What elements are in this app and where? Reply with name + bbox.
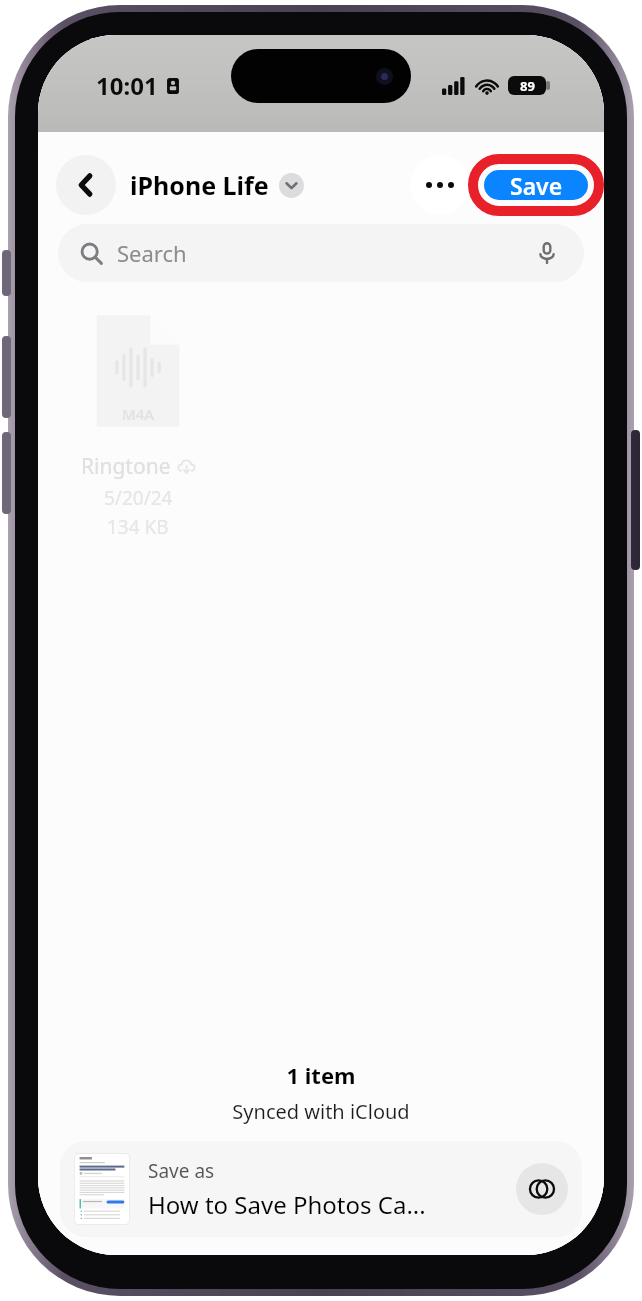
- button[interactable]: M4A: [58, 312, 218, 540]
- staticText: 5/20/24: [104, 485, 173, 511]
- button[interactable]: Voice search: [532, 238, 562, 268]
- staticText: 1 item: [286, 1060, 356, 1090]
- button[interactable]: iPhone Life: [130, 168, 304, 202]
- button[interactable]: More options: [410, 155, 470, 215]
- button[interactable]: Appearance options: [516, 1163, 568, 1215]
- button[interactable]: Back: [56, 155, 116, 215]
- staticText: 89: [520, 77, 535, 95]
- staticText: 134 KB: [107, 514, 169, 540]
- button[interactable]: Search: [58, 224, 584, 282]
- staticText: M4A: [122, 404, 155, 424]
- button[interactable]: Save: [484, 170, 588, 200]
- button[interactable]: Save as: [60, 1141, 582, 1237]
- staticText: Search: [117, 238, 187, 268]
- staticText: 10:01: [96, 69, 158, 102]
- staticText: iPhone Life: [130, 168, 269, 202]
- staticText: Ringtone: [81, 452, 171, 481]
- staticText: Save: [510, 170, 563, 200]
- staticText: Synced with iCloud: [232, 1098, 410, 1125]
- staticText: How to Save Photos Ca...: [148, 1188, 426, 1221]
- staticText: Save as: [148, 1158, 215, 1184]
